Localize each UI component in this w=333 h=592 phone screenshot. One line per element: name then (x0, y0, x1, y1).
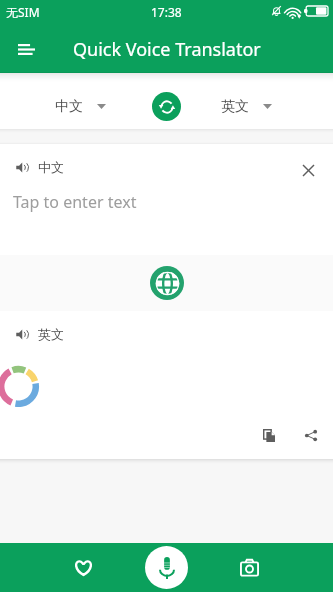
button[interactable]: Clear text (293, 155, 323, 185)
button[interactable]: Share translation (298, 422, 324, 448)
staticText: 17:38 (151, 4, 182, 20)
button[interactable]: Tap to enter text (0, 190, 333, 255)
staticText: Tap to enter text (13, 191, 137, 213)
button[interactable]: 英文 (181, 84, 312, 129)
staticText: 英文 (221, 98, 249, 116)
staticText: Quick Voice Translator (73, 37, 261, 62)
staticText: 中文 (55, 98, 83, 116)
button[interactable]: Translate (150, 266, 184, 300)
button[interactable]: Camera translate (166, 543, 333, 592)
button[interactable]: 中文 (8, 84, 152, 129)
staticText: 英文 (38, 326, 64, 342)
button[interactable]: Record voice (145, 546, 188, 589)
button[interactable]: Swap languages (152, 92, 181, 121)
staticText: 无SIM (6, 4, 40, 20)
button[interactable]: Copy translation (256, 422, 282, 448)
button[interactable]: Favorites (0, 543, 166, 592)
button[interactable]: Open navigation menu (6, 29, 46, 69)
staticText: 中文 (38, 159, 64, 175)
